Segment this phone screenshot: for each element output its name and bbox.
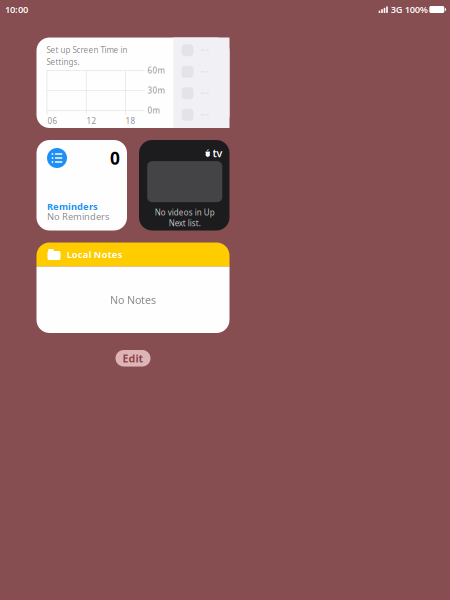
staticText: Next list.	[169, 218, 201, 228]
staticText: No Notes	[110, 293, 156, 307]
button[interactable]: Edit	[115, 350, 150, 366]
staticText: Edit	[122, 351, 143, 365]
staticText: 12	[86, 115, 96, 126]
staticText: No videos in Up	[155, 207, 215, 218]
staticText: 60m	[147, 65, 164, 76]
staticText: Reminders	[47, 200, 98, 213]
staticText: 10:00	[5, 3, 28, 16]
staticText: 06	[47, 115, 57, 126]
staticText: Set up Screen Time in	[46, 44, 127, 55]
staticText: 3G 100%	[391, 3, 428, 16]
staticText: 18	[125, 115, 135, 126]
staticText: 30m	[147, 85, 164, 96]
staticText: Local Notes	[66, 248, 122, 261]
staticText: tv	[212, 146, 222, 160]
staticText: 0m	[147, 105, 159, 116]
staticText: Settings.	[46, 56, 79, 67]
staticText: No Reminders	[47, 210, 109, 222]
staticText: 0	[110, 146, 120, 169]
